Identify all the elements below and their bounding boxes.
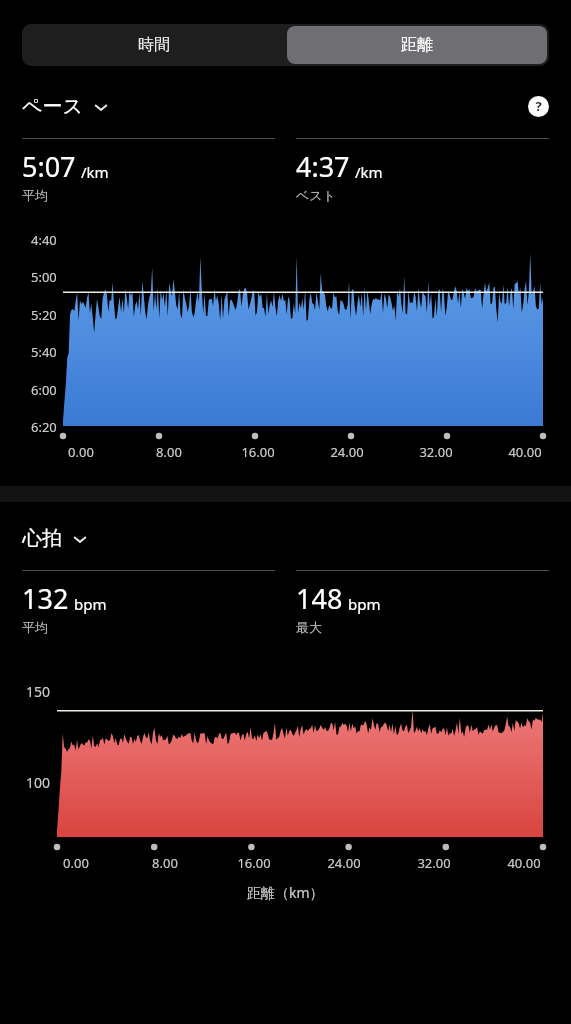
- staticText: 8.00: [152, 854, 178, 872]
- staticText: 5:20: [31, 306, 57, 324]
- staticText: 距離（km）: [247, 883, 324, 902]
- staticText: 132: [22, 580, 69, 617]
- button[interactable]: 5:07: [22, 138, 275, 203]
- staticText: ペース: [22, 94, 83, 119]
- button[interactable]: ペース: [0, 90, 131, 123]
- staticText: 16.00: [237, 854, 271, 872]
- staticText: 6:20: [31, 418, 57, 436]
- staticText: 6:00: [31, 381, 57, 399]
- staticText: bpm: [348, 594, 381, 614]
- button[interactable]: 148: [296, 570, 549, 635]
- staticText: 時間: [138, 35, 170, 55]
- staticText: 32.00: [419, 443, 453, 461]
- staticText: /km: [81, 162, 109, 182]
- staticText: 16.00: [241, 443, 275, 461]
- staticText: 8.00: [156, 443, 182, 461]
- staticText: 0.00: [68, 443, 94, 461]
- staticText: 32.00: [417, 854, 451, 872]
- staticText: 5:00: [31, 268, 57, 286]
- button[interactable]: 距離: [287, 26, 547, 64]
- staticText: 24.00: [327, 854, 361, 872]
- button[interactable]: Help: [523, 91, 553, 121]
- staticText: 40.00: [507, 854, 541, 872]
- staticText: 148: [296, 580, 343, 617]
- button[interactable]: 心拍: [0, 522, 110, 555]
- staticText: /km: [355, 162, 383, 182]
- button[interactable]: 4:37: [296, 138, 549, 203]
- staticText: ベスト: [296, 187, 336, 203]
- staticText: 心拍: [22, 526, 62, 551]
- button[interactable]: 時間: [22, 24, 285, 66]
- staticText: 4:37: [296, 148, 350, 185]
- staticText: 24.00: [330, 443, 364, 461]
- staticText: 5:07: [22, 148, 76, 185]
- staticText: 距離: [401, 35, 433, 55]
- staticText: ?: [535, 97, 542, 115]
- staticText: bpm: [74, 594, 107, 614]
- button[interactable]: 132: [22, 570, 275, 635]
- staticText: 4:40: [31, 231, 57, 249]
- staticText: 5:40: [31, 343, 57, 361]
- staticText: 平均: [22, 187, 48, 203]
- staticText: 最大: [296, 619, 322, 635]
- staticText: 150: [26, 682, 51, 701]
- staticText: 40.00: [508, 443, 542, 461]
- staticText: 0.00: [63, 854, 89, 872]
- staticText: 100: [26, 773, 51, 792]
- staticText: 平均: [22, 619, 48, 635]
